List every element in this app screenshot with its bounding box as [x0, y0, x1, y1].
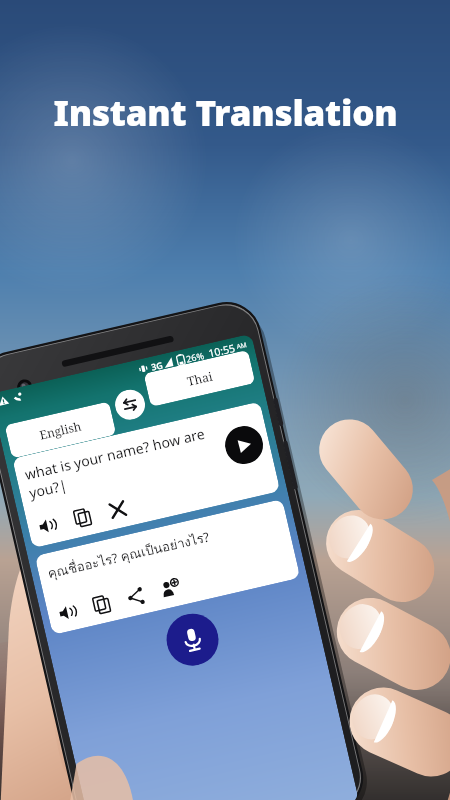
- staticText: 26%: [185, 349, 205, 365]
- button[interactable]: Voice input: [161, 608, 224, 671]
- button[interactable]: Translate: [221, 422, 267, 468]
- button[interactable]: English: [4, 401, 116, 459]
- button[interactable]: Share translation: [124, 585, 147, 608]
- button[interactable]: what is your name? how are you?|: [12, 401, 280, 548]
- staticText: AM: [236, 340, 248, 351]
- staticText: Instant Translation: [53, 89, 398, 137]
- staticText: 10:55: [207, 341, 236, 360]
- button[interactable]: Copy source text: [71, 506, 94, 529]
- button[interactable]: Speak source text: [36, 514, 59, 537]
- staticText: คุณชื่ออะไร? คุณเป็นอย่างไร?: [46, 526, 212, 584]
- button[interactable]: Swap languages: [112, 387, 148, 423]
- button[interactable]: Copy translation: [90, 593, 113, 616]
- staticText: 3G: [150, 358, 164, 373]
- staticText: Thai: [185, 368, 214, 389]
- button[interactable]: Speak translation: [56, 601, 79, 624]
- button[interactable]: Add contact: [159, 577, 181, 600]
- button[interactable]: Thai: [143, 350, 255, 407]
- staticText: what is your name? how are you?|: [23, 423, 214, 502]
- button[interactable]: Clear text: [106, 498, 129, 521]
- staticText: English: [38, 417, 83, 443]
- button[interactable]: คุณชื่ออะไร? คุณเป็นอย่างไร?: [35, 499, 300, 635]
